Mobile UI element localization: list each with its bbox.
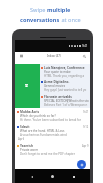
staticText: Don't forget to send me the PDF chapter xyxy=(20,152,75,156)
button[interactable]: Back xyxy=(27,172,36,181)
staticText: Private worm xyxy=(20,148,39,152)
staticText: 9:41 xyxy=(83,110,89,114)
button[interactable]: Acme Digitalino. xyxy=(40,78,90,93)
staticText: Hey guys! Just wanted to tell yo xyxy=(44,88,87,92)
button[interactable]: Menu xyxy=(17,52,25,60)
staticText: April xyxy=(18,137,25,141)
staticText: Yaserish xyxy=(20,144,33,148)
staticText: at once xyxy=(60,16,81,24)
staticText: Believes Part 1 of a Weenspan n xyxy=(44,103,88,107)
button[interactable]: Yaserish xyxy=(15,142,90,156)
staticText: Hi there. You've been subscribed to brea… xyxy=(20,118,82,122)
button[interactable]: Sdavit xyxy=(15,123,90,136)
staticText: What are the hand. HTML & Loss xyxy=(20,129,65,133)
staticText: multiple xyxy=(47,6,71,14)
staticText: 9:12 xyxy=(83,125,89,129)
staticText: Apr 9 xyxy=(82,144,89,148)
staticText: SPECIAL EDITION[What is the sto xyxy=(44,99,89,103)
button[interactable]: Home xyxy=(48,172,57,181)
button[interactable]: Florwain arrivalds xyxy=(40,93,90,108)
staticText: Luis Nanqiera, Conference Badg xyxy=(44,66,89,70)
staticText: Acme Digitalino. xyxy=(44,80,70,84)
staticText: Mubba Acris xyxy=(20,110,40,114)
staticText: Sdavit xyxy=(20,125,30,129)
staticText: Which do you think so far? xyxy=(20,114,56,118)
staticText: 9:41 xyxy=(82,44,88,48)
button[interactable]: Recents xyxy=(69,172,78,181)
staticText: conversations xyxy=(20,16,60,24)
staticText: A voucherings Fundamentals wind xyxy=(20,133,67,136)
staticText: HTML Thank you, regarding a cor xyxy=(44,74,89,78)
staticText: Inbox (47) xyxy=(47,54,61,58)
button[interactable]: Search xyxy=(80,52,88,60)
button[interactable]: Mubba Acris xyxy=(15,108,90,123)
staticText: Florwain arrivalds xyxy=(44,95,72,99)
staticText: Your quote to make xyxy=(44,70,71,74)
staticText: Swipe xyxy=(30,6,47,14)
button[interactable]: Luis Nanqiera, Conference Badg xyxy=(40,64,90,78)
button[interactable]: Compose xyxy=(77,160,86,169)
staticText: General movies xyxy=(44,84,66,88)
